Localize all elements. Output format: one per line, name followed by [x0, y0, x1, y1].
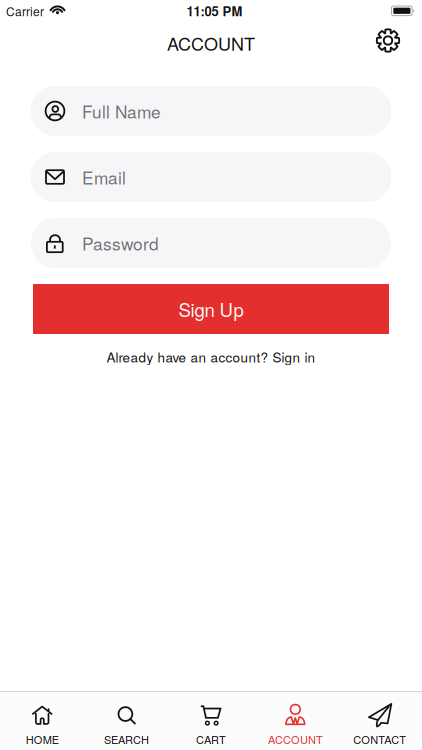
- staticText: Sign Up: [178, 296, 243, 322]
- button[interactable]: HOME: [0, 705, 84, 747]
- button[interactable]: Already have an account? Sign in: [106, 334, 315, 366]
- staticText: 11:05 PM: [186, 2, 242, 20]
- staticText: Email: [82, 165, 126, 189]
- staticText: Carrier: [6, 2, 44, 20]
- button[interactable]: CONTACT: [338, 705, 422, 747]
- staticText: Full Name: [82, 99, 161, 123]
- button[interactable]: CART: [169, 705, 253, 747]
- button[interactable]: ACCOUNT: [253, 705, 338, 747]
- button[interactable]: Full Name: [0, 86, 422, 136]
- button[interactable]: [376, 28, 400, 52]
- staticText: SEARCH: [104, 731, 149, 747]
- button[interactable]: Email: [0, 152, 422, 202]
- staticText: CART: [196, 731, 226, 747]
- button[interactable]: Sign Up: [0, 284, 422, 334]
- staticText: ACCOUNT: [167, 30, 255, 56]
- staticText: Already have an account? Sign in: [106, 347, 315, 366]
- staticText: ACCOUNT: [268, 731, 323, 747]
- staticText: HOME: [26, 731, 59, 747]
- staticText: Password: [82, 231, 159, 255]
- staticText: CONTACT: [353, 731, 406, 747]
- button[interactable]: SEARCH: [84, 705, 169, 747]
- button[interactable]: Password: [0, 218, 422, 268]
